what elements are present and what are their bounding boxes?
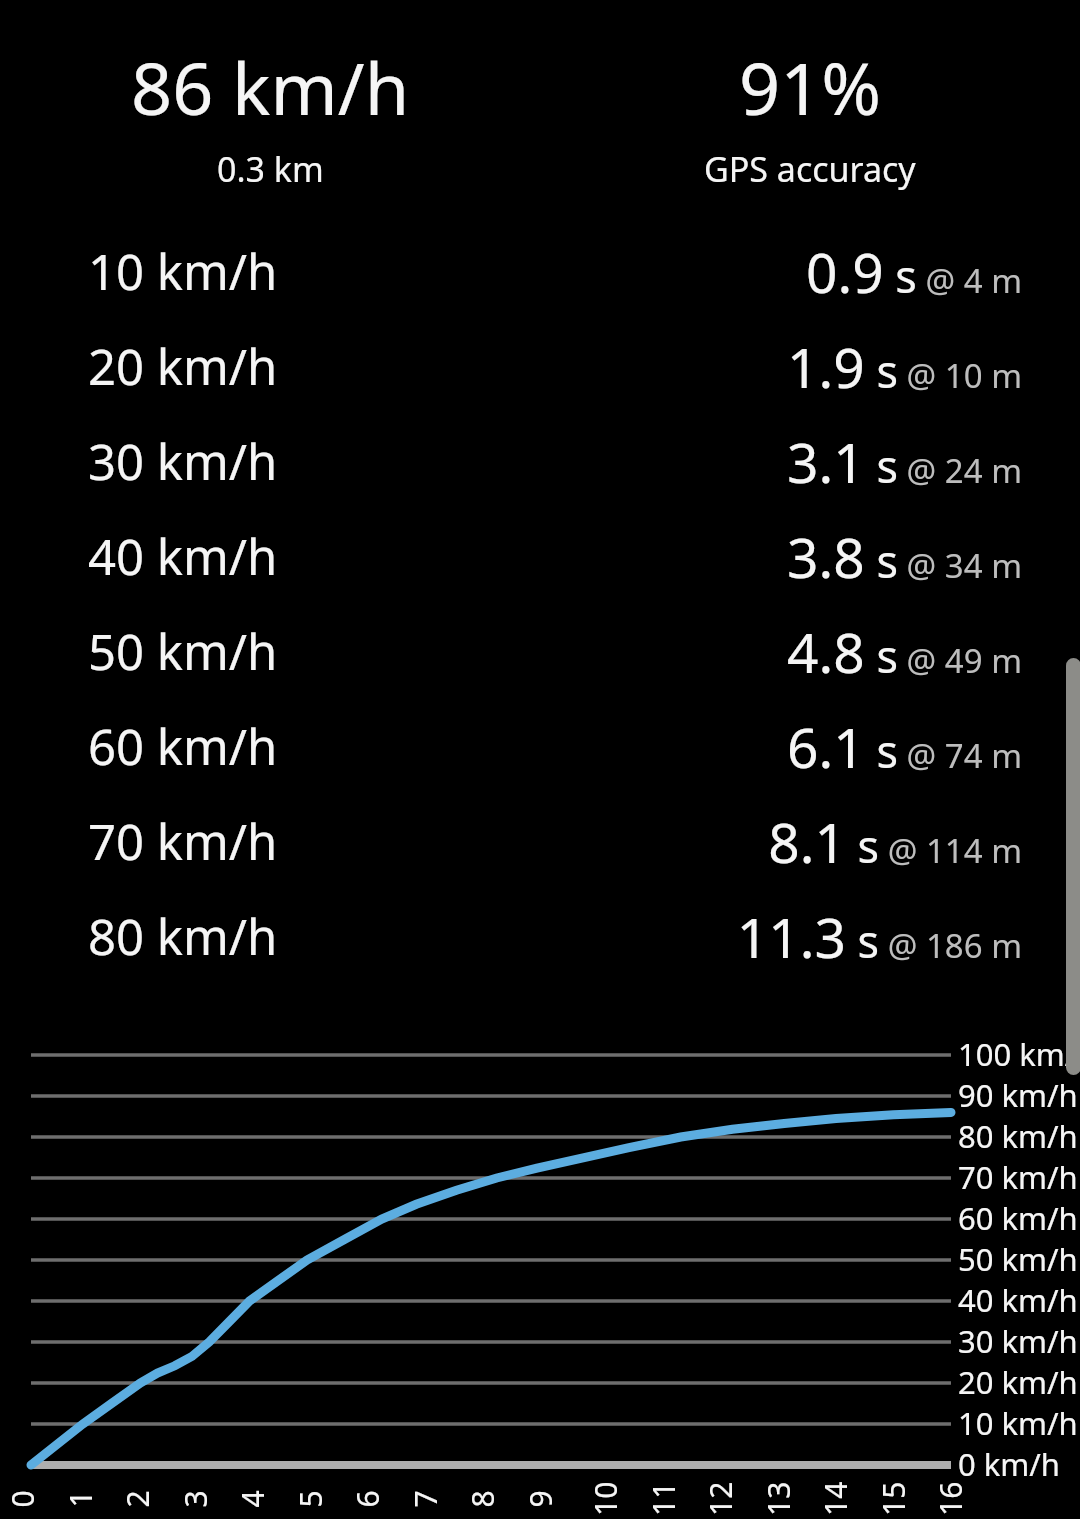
staticText: 90 km/h xyxy=(958,1074,1078,1116)
staticText: 60 km/h xyxy=(88,713,278,780)
staticText: 11 xyxy=(643,1481,684,1516)
staticText: 2 xyxy=(116,1489,157,1507)
staticText: 11.3 s @ 186 m xyxy=(736,899,1022,974)
staticText: 91% xyxy=(739,38,882,136)
staticText: 50 km/h xyxy=(88,618,278,685)
staticText: 30 km/h xyxy=(958,1320,1078,1362)
staticText: 15 xyxy=(873,1481,914,1516)
staticText: 1 xyxy=(59,1489,100,1507)
staticText: 3.8 s @ 34 m xyxy=(787,519,1022,594)
staticText: 10 xyxy=(585,1481,626,1516)
staticText: 0 xyxy=(1,1489,42,1507)
staticText: 86 km/h xyxy=(131,38,410,136)
button[interactable]: 50 km/h xyxy=(0,604,1080,699)
staticText: 6 xyxy=(346,1489,387,1507)
staticText: 5 xyxy=(289,1489,330,1507)
staticText: 14 xyxy=(815,1481,856,1516)
staticText: 12 xyxy=(700,1481,741,1516)
staticText: GPS accuracy xyxy=(704,146,916,192)
staticText: 8 xyxy=(461,1489,502,1507)
staticText: 20 km/h xyxy=(958,1361,1078,1403)
staticText: 7 xyxy=(404,1489,445,1507)
button[interactable]: 91% xyxy=(540,0,1080,205)
button[interactable]: 70 km/h xyxy=(0,794,1080,889)
staticText: 13 xyxy=(758,1481,799,1516)
staticText: 20 km/h xyxy=(88,333,278,400)
staticText: 80 km/h xyxy=(88,903,278,970)
staticText: 40 km/h xyxy=(88,523,278,590)
staticText: 30 km/h xyxy=(88,428,278,495)
staticText: 0 km/h xyxy=(958,1443,1061,1485)
staticText: 0.9 s @ 4 m xyxy=(805,234,1022,309)
button[interactable]: 86 km/h xyxy=(0,0,540,205)
staticText: 60 km/h xyxy=(958,1197,1078,1239)
button[interactable]: 40 km/h xyxy=(0,509,1080,604)
staticText: 0.3 km xyxy=(217,146,324,192)
button[interactable]: 30 km/h xyxy=(0,414,1080,509)
button[interactable]: 80 km/h xyxy=(0,889,1080,984)
staticText: 70 km/h xyxy=(88,808,278,875)
button[interactable]: 60 km/h xyxy=(0,699,1080,794)
staticText: 10 km/h xyxy=(88,238,278,305)
staticText: 6.1 s @ 74 m xyxy=(787,709,1022,784)
staticText: 3 xyxy=(174,1489,215,1507)
button[interactable]: 10 km/h xyxy=(0,224,1080,319)
staticText: 1.9 s @ 10 m xyxy=(787,329,1022,404)
staticText: 80 km/h xyxy=(958,1115,1078,1157)
staticText: 16 xyxy=(930,1481,971,1516)
staticText: 50 km/h xyxy=(958,1238,1078,1280)
staticText: 100 km/h xyxy=(958,1033,1080,1075)
staticText: 10 km/h xyxy=(958,1402,1078,1444)
staticText: 8.1 s @ 114 m xyxy=(768,804,1022,879)
staticText: 40 km/h xyxy=(958,1279,1078,1321)
staticText: 70 km/h xyxy=(958,1156,1078,1198)
staticText: 4 xyxy=(231,1489,272,1507)
staticText: 9 xyxy=(519,1489,560,1507)
staticText: 3.1 s @ 24 m xyxy=(787,424,1022,499)
staticText: 4.8 s @ 49 m xyxy=(787,614,1022,689)
button[interactable]: 20 km/h xyxy=(0,319,1080,414)
